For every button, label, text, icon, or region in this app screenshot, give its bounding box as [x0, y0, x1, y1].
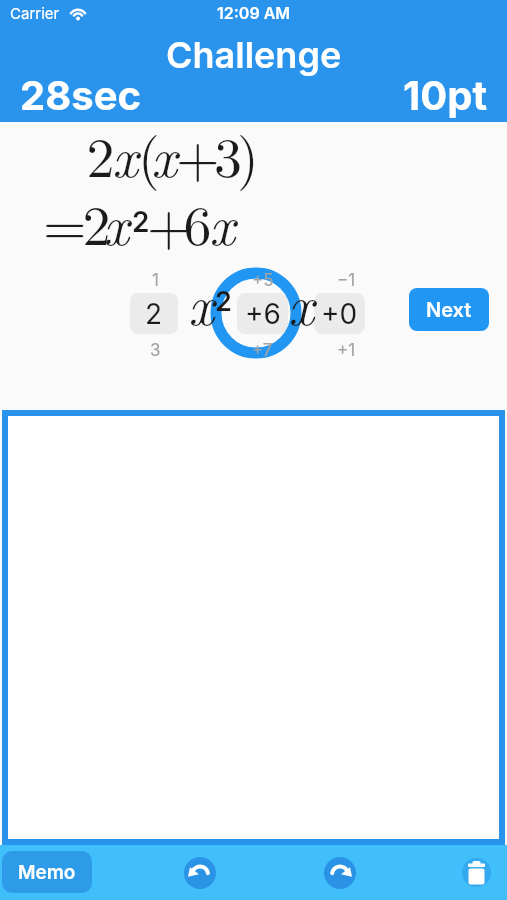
- staticText: 2: [85, 182, 108, 261]
- staticText: x: [103, 182, 129, 261]
- staticText: Next: [426, 298, 472, 322]
- staticText: 28sec: [20, 71, 141, 119]
- button[interactable]: [184, 857, 216, 889]
- staticText: 2: [132, 205, 150, 239]
- staticText: Challenge: [166, 33, 342, 77]
- button[interactable]: 2: [130, 293, 178, 334]
- staticText: 2: [215, 285, 232, 318]
- staticText: =: [43, 182, 82, 261]
- staticText: +1: [337, 340, 356, 360]
- staticText: 12:09 AM: [217, 3, 291, 22]
- button[interactable]: Memo: [2, 851, 92, 893]
- staticText: −1: [337, 270, 356, 290]
- button[interactable]: [462, 858, 491, 887]
- staticText: +7: [252, 340, 273, 360]
- staticText: 10pt: [403, 71, 488, 119]
- staticText: 6: [186, 182, 209, 261]
- staticText: +: [147, 182, 186, 261]
- button[interactable]: [324, 857, 356, 889]
- staticText: 3: [150, 340, 161, 360]
- button[interactable]: +6: [237, 293, 288, 334]
- staticText: +0: [321, 297, 358, 331]
- staticText: +6: [245, 297, 281, 331]
- staticText: 2: [145, 297, 163, 331]
- staticText: x: [188, 262, 214, 341]
- staticText: (: [138, 114, 155, 193]
- staticText: x: [112, 114, 138, 193]
- staticText: x: [151, 114, 177, 193]
- staticText: x: [209, 182, 235, 261]
- staticText: 2: [89, 114, 112, 193]
- button[interactable]: [2, 410, 505, 845]
- staticText: +: [176, 114, 215, 193]
- staticText: +5: [252, 270, 274, 290]
- button[interactable]: +0: [314, 293, 365, 334]
- staticText: Carrier: [10, 4, 60, 22]
- staticText: 3): [214, 114, 254, 193]
- staticText: Memo: [18, 861, 76, 884]
- button[interactable]: Next: [409, 288, 489, 331]
- staticText: x: [288, 262, 314, 341]
- staticText: 1: [152, 270, 159, 290]
